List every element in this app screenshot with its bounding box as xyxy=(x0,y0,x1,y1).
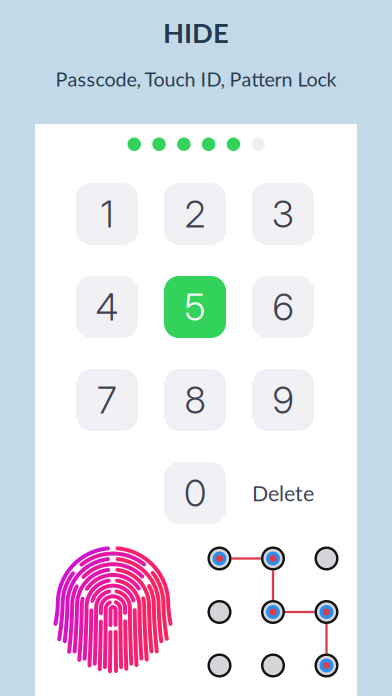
staticText: 6 xyxy=(272,284,293,330)
button[interactable]: 4 xyxy=(76,276,138,338)
button[interactable]: 3 xyxy=(252,183,314,245)
button[interactable]: Delete xyxy=(252,462,314,524)
staticText: 9 xyxy=(272,377,293,423)
button[interactable]: 7 xyxy=(76,369,138,431)
staticText: 1 xyxy=(100,191,113,237)
staticText: 8 xyxy=(184,377,205,423)
staticText: Passcode, Touch ID, Pattern Lock xyxy=(55,67,336,91)
staticText: HIDE xyxy=(163,16,229,49)
button[interactable]: 1 xyxy=(76,183,138,245)
staticText: 0 xyxy=(184,470,206,516)
button[interactable]: 6 xyxy=(252,276,314,338)
button[interactable]: 0 xyxy=(164,462,226,524)
staticText: 4 xyxy=(95,284,118,330)
staticText: 5 xyxy=(184,284,205,330)
staticText: 3 xyxy=(272,191,294,237)
staticText: Delete xyxy=(252,480,314,506)
button[interactable]: 9 xyxy=(252,369,314,431)
button[interactable]: 5 xyxy=(164,276,226,338)
staticText: 7 xyxy=(97,377,117,423)
button[interactable]: 8 xyxy=(164,369,226,431)
staticText: 2 xyxy=(184,191,205,237)
button[interactable]: 2 xyxy=(164,183,226,245)
